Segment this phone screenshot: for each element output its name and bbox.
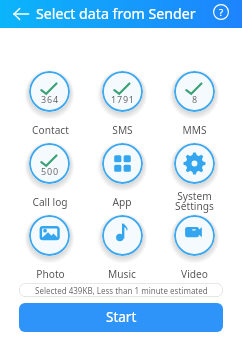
button[interactable]: System Settings <box>174 143 215 184</box>
button[interactable]: Call log <box>29 143 70 184</box>
button[interactable]: App <box>102 143 143 184</box>
staticText: Contact <box>32 123 69 137</box>
button[interactable]: MMS <box>174 71 215 112</box>
staticText: App <box>112 195 132 209</box>
staticText: Video <box>181 267 208 281</box>
staticText: ? <box>219 6 224 19</box>
staticText: System <box>177 189 212 203</box>
staticText: Settings <box>175 199 214 213</box>
staticText: 8 <box>192 93 198 105</box>
staticText: Music <box>108 267 136 281</box>
staticText: 364 <box>41 93 59 105</box>
button[interactable]: Back <box>7 0 35 28</box>
staticText: MMS <box>182 123 207 137</box>
staticText: Photo <box>36 267 65 281</box>
staticText: 500 <box>41 165 59 177</box>
staticText: 1791 <box>111 93 135 105</box>
button[interactable]: Music <box>102 215 143 256</box>
staticText: Call log <box>32 195 68 209</box>
button[interactable]: Contact <box>29 71 70 112</box>
staticText: Select data from Sender <box>36 4 196 23</box>
staticText: Start <box>106 308 137 326</box>
staticText: SMS <box>112 123 133 137</box>
button[interactable]: SMS <box>102 71 143 112</box>
button[interactable]: Start <box>19 303 223 332</box>
staticText: Selected 439KB, Less than 1 minute estim… <box>35 285 208 296</box>
button[interactable]: Photo <box>29 215 70 256</box>
button[interactable]: Help <box>209 0 233 24</box>
button[interactable]: Video <box>174 215 215 256</box>
